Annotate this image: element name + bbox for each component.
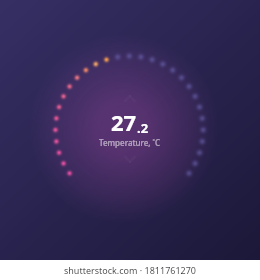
other: Temperature gauge [0, 0, 260, 280]
staticText: shutterstock.com · 1811761270 [64, 264, 197, 276]
staticText: 27 [111, 107, 137, 137]
staticText: .2 [137, 119, 149, 137]
staticText: Temperature, ˚C [99, 137, 161, 148]
button[interactable]: 27 [99, 107, 161, 148]
